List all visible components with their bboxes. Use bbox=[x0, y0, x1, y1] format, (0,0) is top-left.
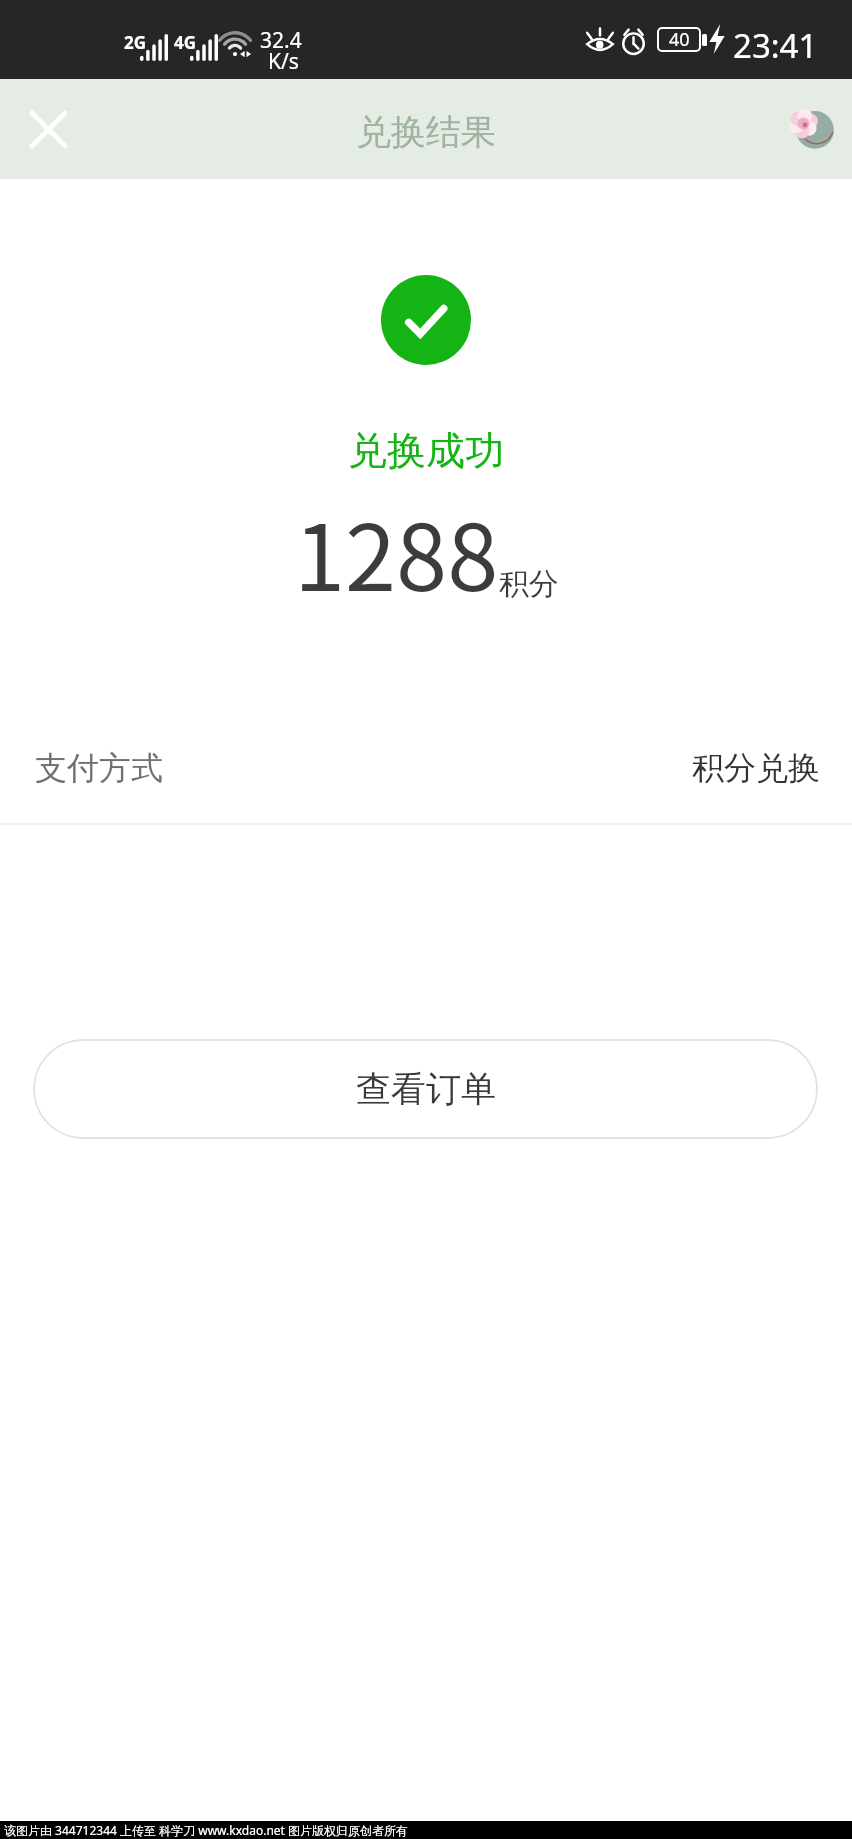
button[interactable]: 支付方式 bbox=[0, 724, 852, 812]
staticText: 查看订单 bbox=[356, 1067, 496, 1111]
staticText: 兑换结果 bbox=[356, 110, 496, 154]
staticText: 支付方式 bbox=[35, 748, 163, 788]
staticText: 23:41 bbox=[733, 23, 818, 68]
button[interactable]: Profile bbox=[778, 98, 840, 160]
staticText: 32.4 bbox=[260, 26, 302, 55]
staticText: 兑换成功 bbox=[348, 426, 504, 475]
staticText: 4G bbox=[174, 31, 197, 54]
staticText: 积分兑换 bbox=[692, 748, 820, 788]
staticText: 1288 bbox=[294, 484, 499, 617]
staticText: K/s bbox=[268, 47, 299, 76]
staticText: 该图片由 344712344 上传至 科学刀 www.kxdao.net 图片版… bbox=[4, 1822, 409, 1838]
staticText: 积分 bbox=[499, 565, 559, 603]
button[interactable]: 查看订单 bbox=[33, 1039, 818, 1139]
staticText: 2G bbox=[124, 31, 147, 54]
button[interactable]: Close bbox=[14, 95, 82, 163]
staticText: 40 bbox=[669, 27, 690, 52]
